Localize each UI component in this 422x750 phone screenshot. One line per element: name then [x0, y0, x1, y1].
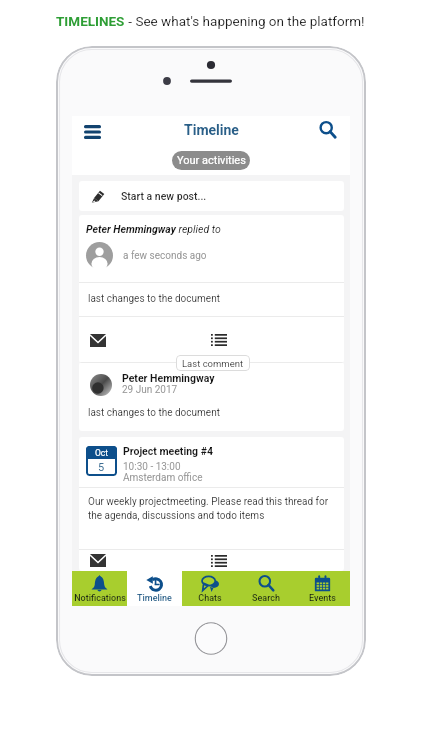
staticText: Start a new post...	[121, 190, 207, 202]
staticText: Last comment	[182, 358, 244, 369]
staticText: Chats	[198, 593, 222, 604]
button[interactable]: Chats	[182, 571, 238, 606]
staticText: Notifications	[74, 593, 126, 604]
staticText: Peter Hemmingway	[86, 223, 176, 235]
staticText: Oct	[95, 448, 109, 458]
staticText: last changes to the document	[88, 407, 220, 419]
staticText: 29 Jun 2017	[122, 384, 178, 396]
staticText: 5	[98, 461, 105, 474]
button[interactable]: Events	[294, 571, 350, 606]
button[interactable]: Your activities	[172, 151, 250, 170]
button[interactable]: Start a new post...	[79, 181, 344, 211]
staticText: Events	[309, 593, 336, 604]
button[interactable]: Details	[116, 550, 322, 571]
button[interactable]: Message	[79, 317, 116, 363]
button[interactable]: Search	[238, 571, 294, 606]
staticText: last changes to the document	[88, 293, 220, 305]
staticText: 10:30 - 13:00	[123, 461, 181, 473]
button[interactable]: Details	[116, 317, 322, 363]
staticText: TIMELINES	[56, 13, 125, 29]
button[interactable]: Timeline	[127, 571, 182, 606]
staticText: Timeline	[137, 593, 172, 604]
staticText: replied to	[176, 223, 221, 235]
staticText: a few seconds ago	[123, 250, 207, 262]
staticText: Peter Hemmingway	[122, 372, 215, 384]
staticText: Your activities	[177, 154, 246, 167]
staticText: Timeline	[184, 122, 239, 138]
button[interactable]: Message	[79, 550, 116, 571]
button[interactable]: Notifications	[72, 571, 127, 606]
staticText: Project meeting #4	[123, 445, 213, 457]
staticText: - See what's happening on the platform!	[125, 13, 365, 29]
staticText: Search	[252, 593, 280, 604]
staticText: Our weekly projectmeeting. Please read t…	[88, 496, 335, 522]
button[interactable]: Search	[312, 116, 344, 144]
staticText: Amsterdam office	[123, 472, 203, 484]
button[interactable]: Open navigation menu	[76, 118, 108, 146]
